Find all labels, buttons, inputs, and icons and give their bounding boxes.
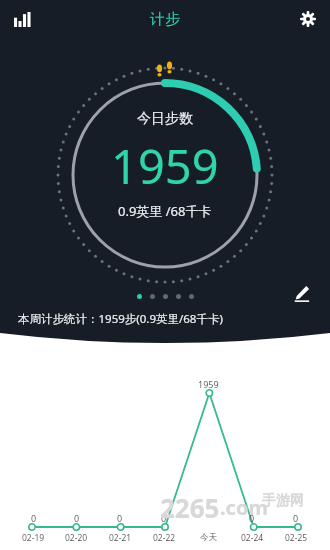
staticText: 02-25 [285, 532, 308, 544]
staticText: 02-24 [241, 532, 264, 544]
staticText: 02-21 [109, 532, 132, 544]
staticText: 今日步数 [137, 110, 193, 128]
staticText: 计步 [150, 10, 180, 29]
staticText: 本周计步统计：1959步(0.9英里/68千卡) [18, 311, 223, 327]
staticText: 0.9英里 /68千卡 [118, 202, 212, 220]
staticText: 1959 [198, 378, 219, 390]
staticText: .com [220, 494, 268, 521]
staticText: 02-20 [65, 532, 88, 544]
staticText: 今天 [200, 532, 217, 543]
staticText: 02-22 [153, 532, 176, 544]
staticText: 手游网 [262, 492, 304, 510]
button[interactable]: Statistics [0, 0, 44, 38]
staticText: 0 [31, 512, 37, 524]
button[interactable]: Edit [286, 278, 316, 308]
staticText: 0 [117, 512, 123, 524]
staticText: 0 [293, 512, 299, 524]
staticText: 0 [249, 512, 255, 524]
staticText: 1959 [111, 134, 219, 198]
staticText: 02-19 [22, 532, 45, 544]
staticText: 0 [161, 512, 167, 524]
staticText: 0 [74, 512, 80, 524]
button[interactable]: Settings [286, 0, 330, 38]
staticText: 2265 [160, 490, 220, 525]
